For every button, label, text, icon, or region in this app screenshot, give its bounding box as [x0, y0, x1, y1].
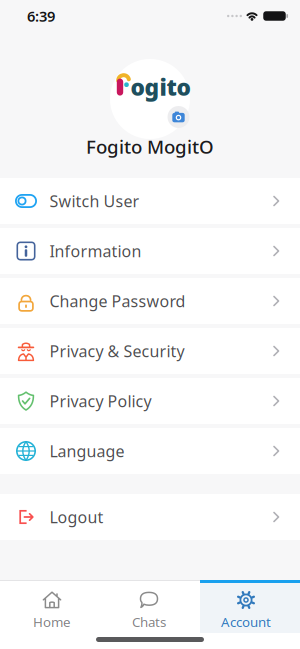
button[interactable]: Change profile photo [110, 59, 190, 139]
staticText: ogito [130, 72, 190, 102]
button[interactable]: Change Password [0, 278, 300, 324]
staticText: Account [221, 613, 271, 631]
staticText: Switch User [49, 190, 139, 212]
button[interactable]: Chats [100, 580, 200, 633]
button[interactable]: Account [200, 580, 300, 633]
staticText: Information [49, 240, 141, 262]
staticText: Chats [132, 613, 166, 631]
staticText: 6:39 [27, 6, 55, 26]
button[interactable]: Logout [0, 494, 300, 540]
staticText: Privacy Policy [49, 390, 151, 412]
staticText: Privacy & Security [49, 340, 184, 362]
button[interactable]: Language [0, 428, 300, 474]
staticText: Logout [49, 506, 103, 528]
button[interactable]: Switch User [0, 178, 300, 224]
button[interactable]: Privacy & Security [0, 328, 300, 374]
staticText: Home [33, 613, 71, 631]
staticText: Change Password [49, 290, 185, 312]
staticText: Language [49, 440, 124, 462]
button[interactable]: Home [0, 580, 100, 633]
button[interactable]: Information [0, 228, 300, 274]
button[interactable]: Privacy Policy [0, 378, 300, 424]
staticText: Fogito MogitO [86, 134, 214, 159]
